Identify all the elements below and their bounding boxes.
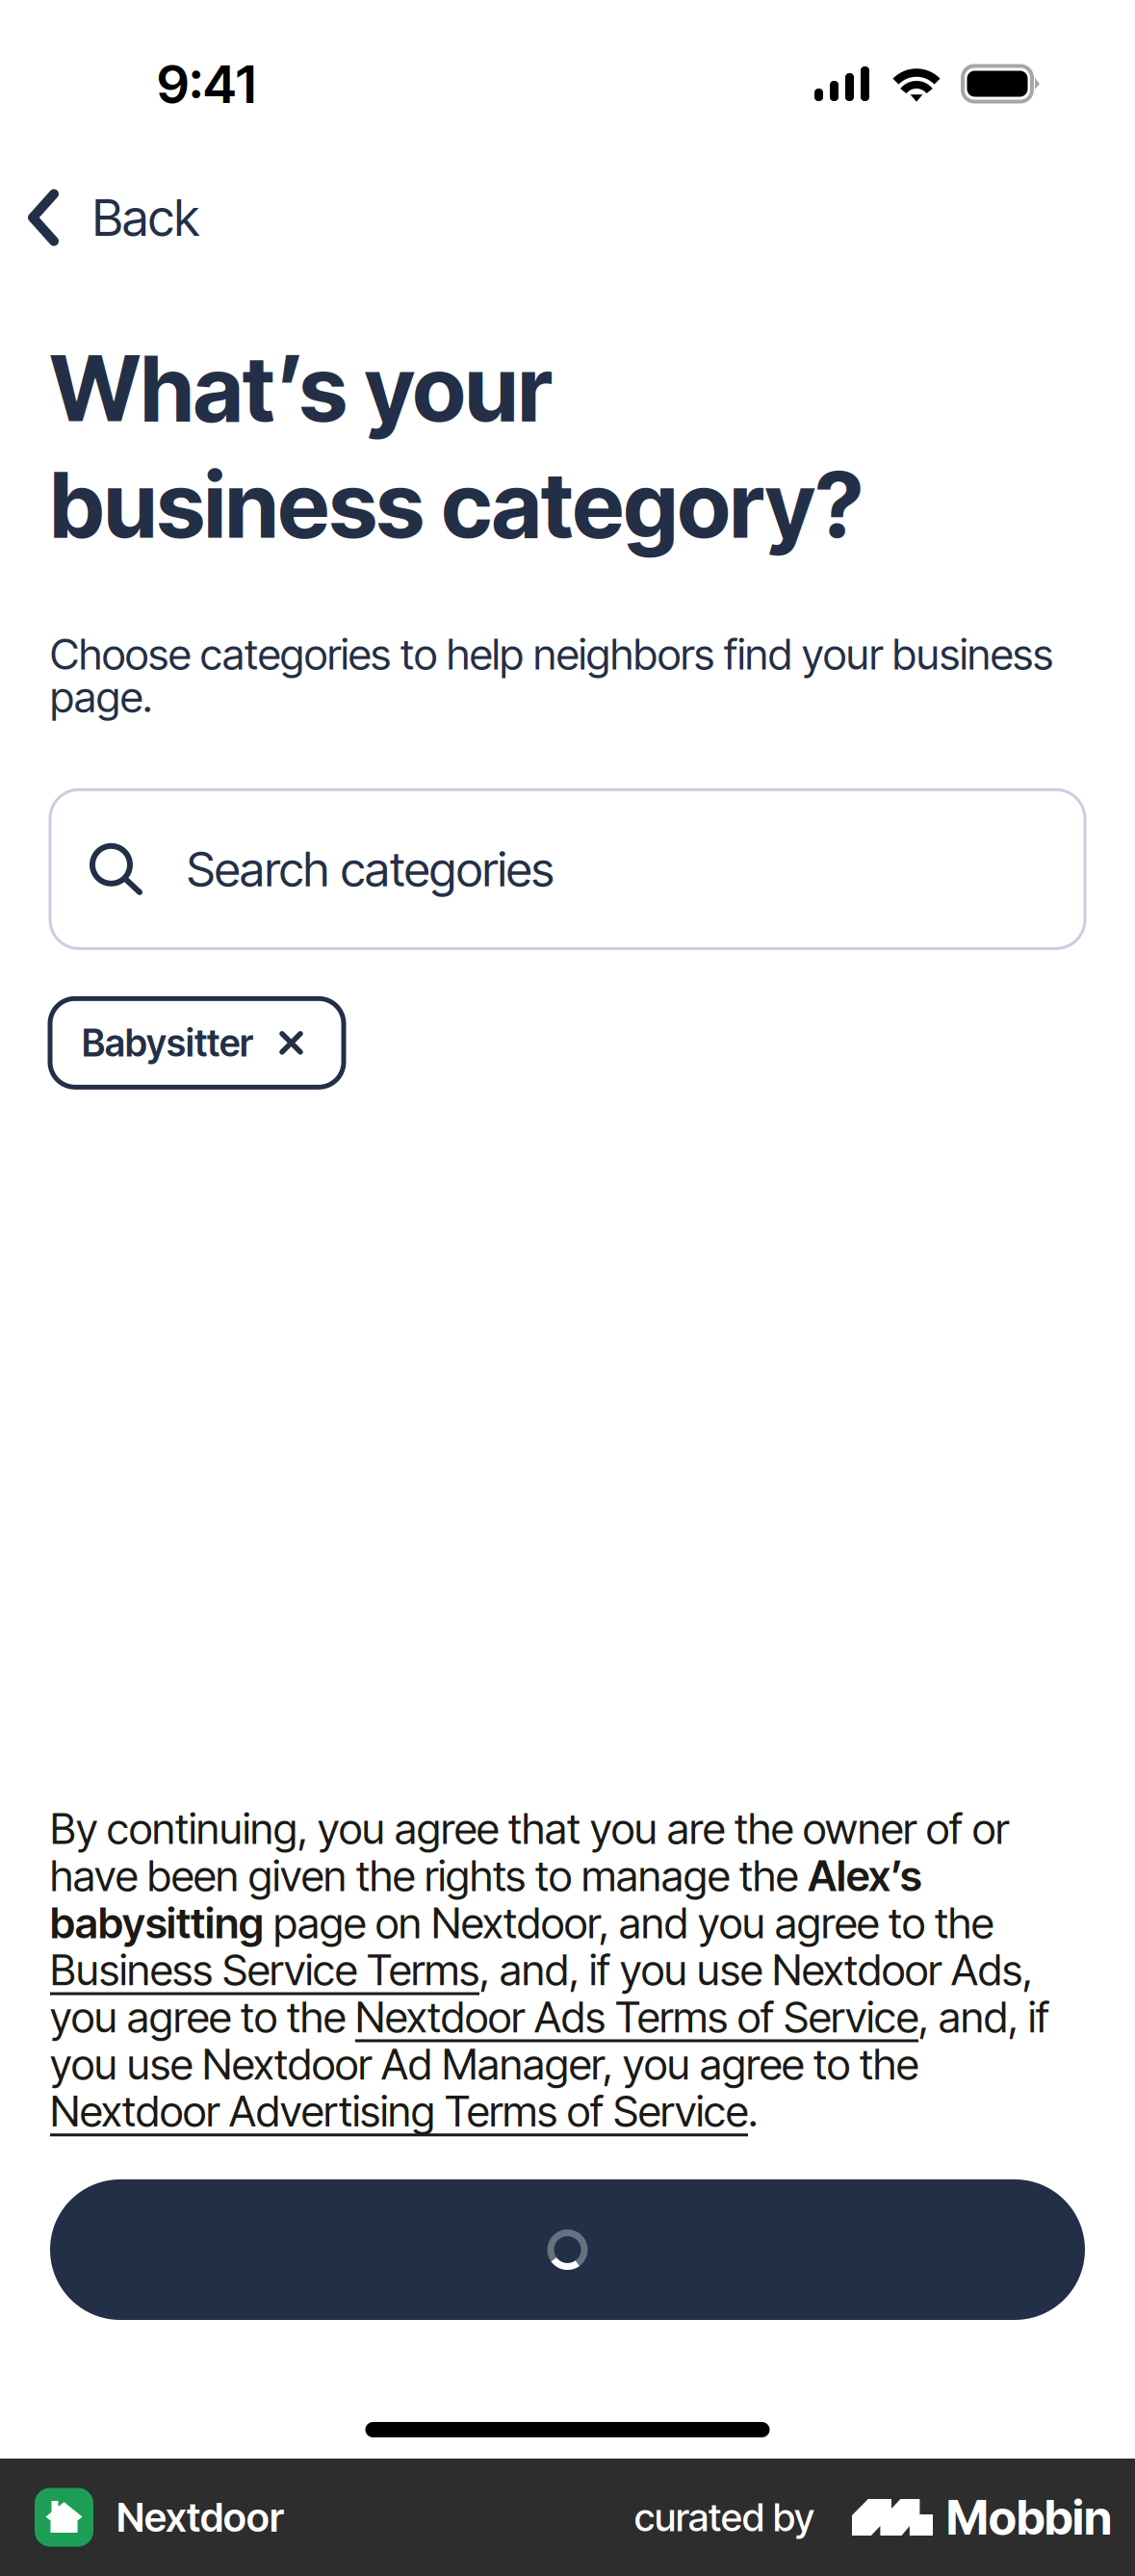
staticText: Mobbin [946, 2489, 1112, 2546]
button[interactable]: Back [0, 163, 222, 272]
staticText: Choose categories to help neighbors find… [50, 629, 1053, 722]
staticText: What’s your business category? [50, 334, 863, 559]
staticText: By continuing, you agree that you are th… [50, 1804, 1049, 2136]
staticText: Nextdoor [116, 2493, 284, 2541]
staticText: curated by [634, 2494, 814, 2541]
button[interactable] [50, 2179, 1085, 2320]
button[interactable]: Babysitter [50, 999, 344, 1087]
staticText: Back [92, 187, 199, 248]
button[interactable]: Search categories [50, 790, 1085, 948]
staticText: Babysitter [82, 1020, 253, 1065]
staticText: Search categories [187, 840, 554, 898]
staticText: 9:41 [157, 52, 256, 116]
